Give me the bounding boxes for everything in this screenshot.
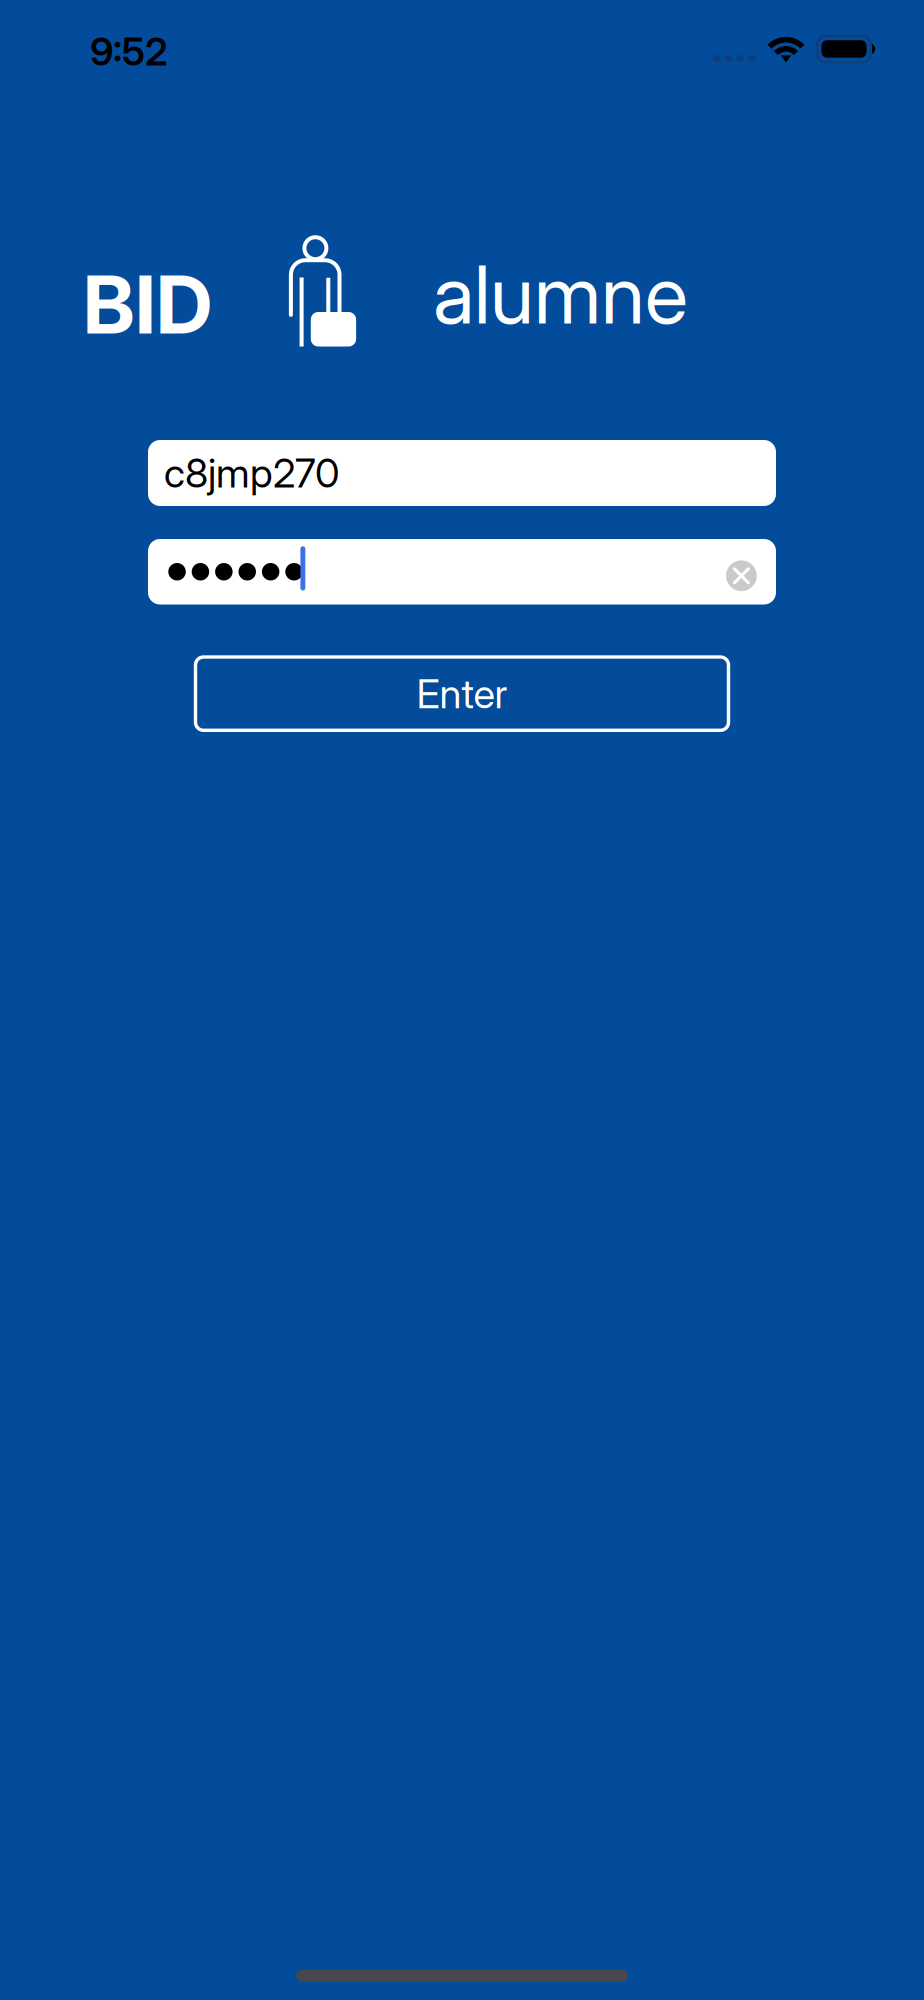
button[interactable]: Enter bbox=[195, 657, 728, 730]
staticText: 9:52 bbox=[90, 28, 168, 75]
staticText: BID bbox=[83, 256, 212, 353]
button[interactable]: c8jmp270 bbox=[148, 440, 776, 506]
staticText: c8jmp270 bbox=[164, 449, 340, 497]
button[interactable]: Clear text bbox=[715, 550, 767, 602]
staticText: alumne bbox=[433, 246, 688, 343]
staticText: Enter bbox=[416, 669, 507, 718]
